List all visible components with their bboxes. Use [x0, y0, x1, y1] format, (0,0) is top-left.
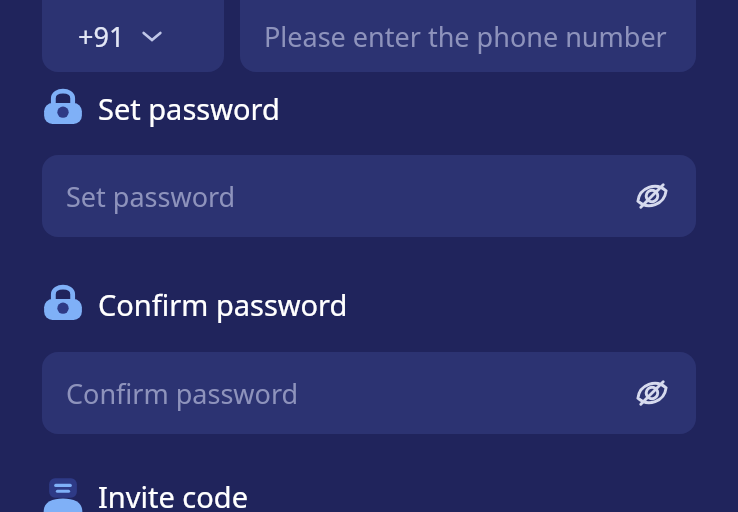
button[interactable]: Please enter the phone number: [240, 0, 696, 72]
button[interactable]: Set password: [42, 86, 280, 130]
staticText: Set password: [98, 89, 280, 128]
staticText: Confirm password: [98, 285, 348, 324]
staticText: Please enter the phone number: [264, 18, 667, 55]
button[interactable]: Invite code: [42, 474, 248, 512]
button[interactable]: +91: [42, 0, 224, 72]
staticText: Invite code: [98, 477, 248, 512]
button[interactable]: Confirm password: [42, 282, 348, 326]
staticText: Confirm password: [66, 375, 299, 412]
staticText: Set password: [66, 178, 236, 215]
button[interactable]: Show Set password: [630, 174, 674, 218]
button[interactable]: Confirm password: [42, 352, 696, 434]
staticText: +91: [78, 18, 125, 55]
button[interactable]: Set password: [42, 155, 696, 237]
button[interactable]: Show Confirm password: [630, 371, 674, 415]
